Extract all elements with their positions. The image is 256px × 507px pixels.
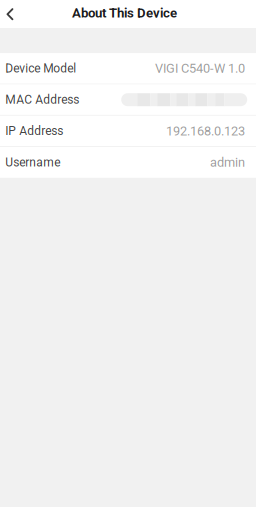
staticText: Device Model <box>5 61 76 75</box>
button[interactable]: Device Model <box>0 53 256 84</box>
staticText: IP Address <box>5 124 63 138</box>
staticText: About This Device <box>72 5 177 21</box>
staticText: 192.168.0.123 <box>166 123 245 138</box>
staticText: MAC Address <box>5 93 79 107</box>
button[interactable]: MAC Address <box>0 84 256 115</box>
button[interactable]: Back <box>0 0 26 28</box>
staticText: Username <box>5 155 60 169</box>
button[interactable]: Username <box>0 147 256 177</box>
button[interactable]: IP Address <box>0 116 256 146</box>
staticText: admin <box>210 155 245 170</box>
staticText: VIGI C540-W 1.0 <box>155 61 245 76</box>
